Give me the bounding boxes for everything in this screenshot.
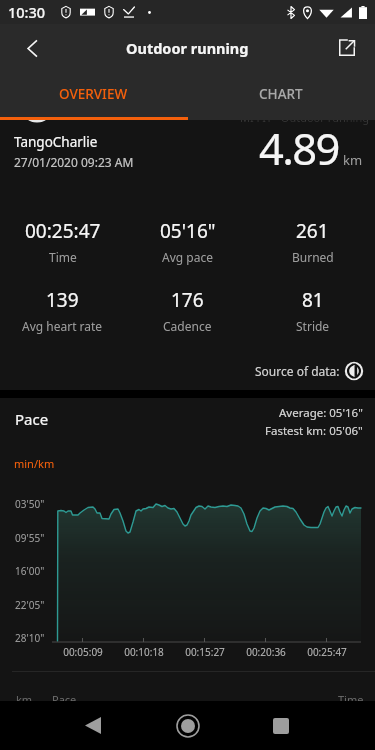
button[interactable]: Back [68,701,117,750]
button[interactable]: Back [4,24,60,72]
button[interactable]: Home [163,701,212,750]
staticText: Time [338,692,364,701]
button[interactable]: Share [323,24,371,72]
staticText: 176 [171,287,204,313]
staticText: Source of data: [255,363,340,379]
button[interactable]: CHART [187,72,375,120]
staticText: 00:10:18 [112,645,176,659]
staticText: km [16,692,33,701]
staticText: 261 [296,218,329,244]
staticText: 03'50" [15,497,45,511]
staticText: Pace [52,692,77,701]
staticText: km [343,151,363,169]
staticText: 00:15:27 [173,645,237,659]
staticText: Time [49,249,77,265]
staticText: TangoCharlie [14,133,98,151]
staticText: 28'10" [15,631,45,645]
staticText: 16'00" [15,564,45,578]
button[interactable]: Recent apps [256,701,305,750]
staticText: Avg pace [162,249,213,265]
button[interactable]: OVERVIEW [0,72,187,120]
staticText: Pace [15,409,49,429]
staticText: 00:25:47 [295,645,359,659]
staticText: Avg heart rate [22,318,103,334]
staticText: Stride [296,318,330,334]
staticText: 10:30 [8,2,46,22]
staticText: min/km [14,456,55,471]
staticText: CHART [259,85,303,103]
staticText: 09'55" [15,531,45,545]
staticText: 81 [302,287,324,313]
staticText: OVERVIEW [59,85,128,103]
staticText: 00:05:09 [51,645,115,659]
staticText: Average: 05'16" [279,405,363,421]
staticText: 27/01/2020 09:23 AM [14,154,134,170]
staticText: Outdoor running [126,38,249,58]
staticText: 00:20:36 [234,645,298,659]
staticText: MI FIT · Outdoor running [240,120,369,125]
staticText: 05'16" [160,218,216,244]
staticText: Cadence [163,318,212,334]
staticText: Fastest km: 05'06" [265,423,363,439]
staticText: 139 [46,287,79,313]
staticText: Burned [292,249,334,265]
staticText: 4.89 [259,120,339,177]
staticText: 00:25:47 [25,218,101,244]
staticText: 22'05" [15,598,45,612]
